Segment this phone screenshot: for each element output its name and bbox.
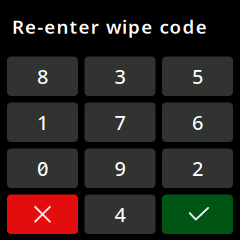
button[interactable]: 9 [84, 148, 155, 188]
button[interactable]: 3 [84, 56, 155, 96]
staticText: 3 [114, 63, 125, 90]
staticText: 5 [192, 63, 203, 90]
button[interactable]: Cancel [7, 194, 78, 234]
staticText: 8 [37, 63, 48, 90]
button[interactable]: 0 [7, 148, 78, 188]
staticText: 9 [114, 155, 125, 182]
staticText: 2 [192, 155, 203, 182]
button[interactable]: 7 [84, 102, 155, 142]
staticText: 0 [37, 155, 48, 182]
button[interactable]: 8 [7, 56, 78, 96]
button[interactable]: 4 [84, 194, 155, 234]
button[interactable]: Confirm [162, 194, 233, 234]
button[interactable]: 5 [162, 56, 233, 96]
staticText: 4 [114, 201, 125, 228]
button[interactable]: 6 [162, 102, 233, 142]
button[interactable]: 2 [162, 148, 233, 188]
staticText: 7 [114, 109, 125, 136]
staticText: 6 [192, 109, 203, 136]
staticText: Re-enter wipe code [12, 14, 207, 39]
staticText: 1 [37, 109, 48, 136]
button[interactable]: 1 [7, 102, 78, 142]
